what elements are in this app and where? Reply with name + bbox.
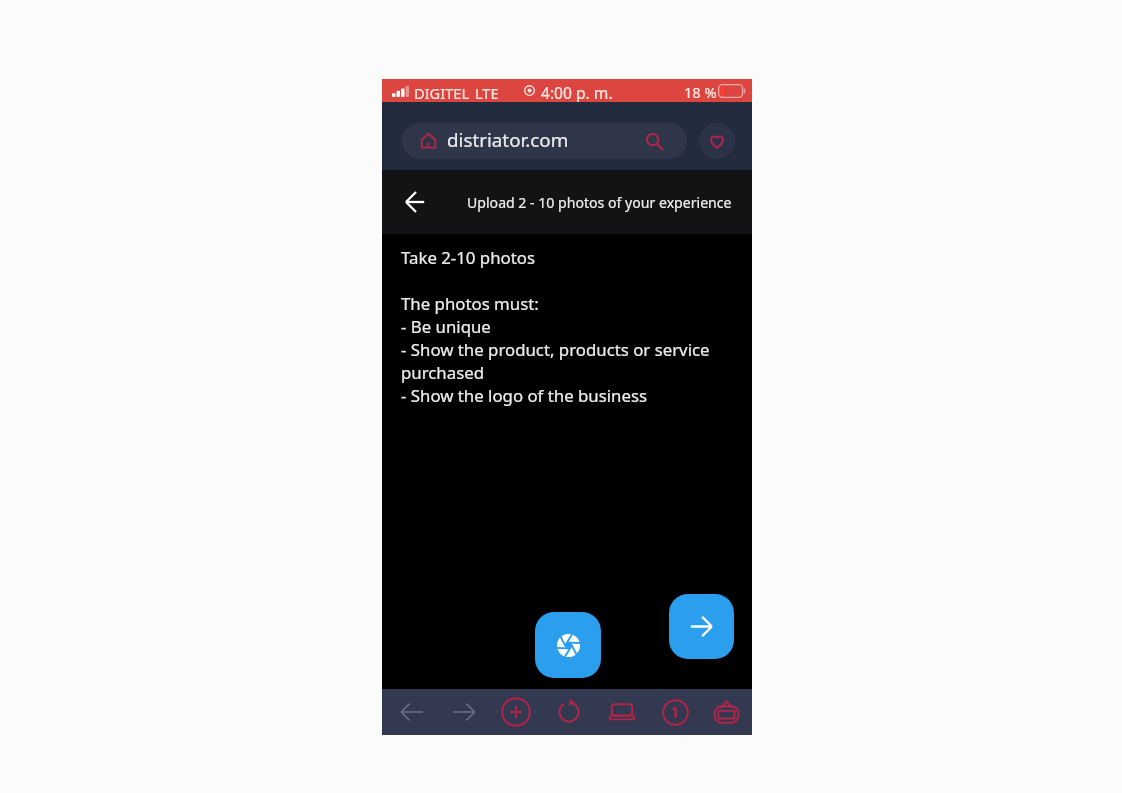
button[interactable]: Reload [547, 689, 591, 735]
staticText: The photos must: - Be unique - Show the … [401, 292, 721, 407]
button[interactable]: Favorites [699, 123, 735, 159]
button[interactable]: Take photo [535, 612, 601, 678]
button[interactable]: Search [644, 131, 664, 151]
button[interactable]: Wallet [704, 689, 748, 735]
button[interactable]: Tabs [653, 689, 697, 735]
button[interactable]: Desktop site [600, 689, 644, 735]
staticText: distriator.com [447, 127, 569, 153]
button[interactable]: New tab [494, 689, 538, 735]
staticText: 4:00 p. m. [541, 82, 613, 103]
staticText: DIGITEL [414, 83, 470, 103]
button[interactable]: Back [397, 184, 433, 220]
button[interactable]: distriator.com [402, 123, 687, 159]
staticText: Take 2-10 photos [401, 246, 535, 269]
button[interactable]: Back [390, 689, 434, 735]
button[interactable]: Forward [442, 689, 486, 735]
staticText: LTE [475, 83, 499, 103]
staticText: 18 % [684, 82, 717, 102]
staticText: Upload 2 - 10 photos of your experience [467, 193, 732, 212]
button[interactable]: Next [669, 594, 734, 659]
